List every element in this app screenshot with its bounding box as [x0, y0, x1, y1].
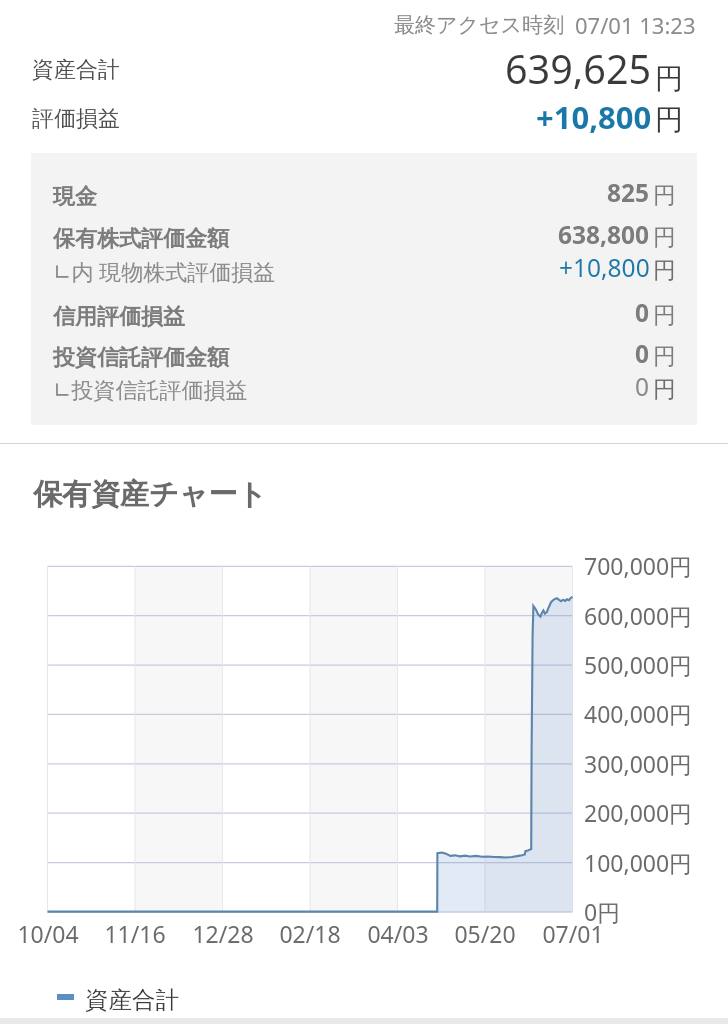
button[interactable]: 投資信託評価金額: [53, 339, 676, 372]
staticText: ∟投資信託評価損益: [53, 377, 248, 405]
staticText: 825: [607, 176, 650, 209]
staticText: 円: [653, 375, 676, 404]
staticText: 円: [655, 61, 683, 96]
button[interactable]: [0, 48, 728, 90]
staticText: 0: [635, 296, 650, 329]
staticText: 円: [655, 102, 683, 137]
staticText: 300,000円: [584, 748, 693, 779]
button[interactable]: 現金: [53, 178, 676, 211]
staticText: +10,800: [536, 96, 652, 138]
staticText: 最終アクセス時刻: [394, 12, 564, 38]
staticText: 円: [653, 223, 676, 252]
staticText: 638,800: [558, 218, 650, 251]
staticText: 円: [653, 256, 676, 285]
staticText: ∟内 現物株式評価損益: [53, 256, 276, 286]
staticText: 400,000円: [584, 698, 693, 729]
staticText: 投資信託評価金額: [53, 344, 229, 372]
staticText: 現金: [53, 183, 97, 211]
staticText: 500,000円: [584, 649, 693, 680]
staticText: 02/18: [265, 918, 355, 949]
staticText: 評価損益: [32, 105, 120, 133]
staticText: 12/28: [178, 918, 268, 949]
button[interactable]: 保有資産チャート: [16, 540, 712, 950]
staticText: 600,000円: [584, 600, 693, 631]
staticText: 07/01 13:23: [575, 10, 696, 40]
staticText: 700,000円: [584, 550, 693, 581]
staticText: 0: [635, 337, 650, 370]
button[interactable]: ∟内 現物株式評価損益: [53, 253, 676, 286]
staticText: 200,000円: [584, 797, 693, 828]
button[interactable]: [0, 100, 728, 140]
button[interactable]: 信用評価損益: [53, 298, 676, 331]
staticText: 0円: [584, 896, 621, 927]
staticText: 07/01: [528, 918, 618, 949]
staticText: 100,000円: [584, 847, 693, 878]
staticText: 円: [653, 181, 676, 210]
button[interactable]: 保有株式評価金額: [53, 220, 676, 253]
staticText: 05/20: [440, 918, 530, 949]
staticText: 639,625: [505, 42, 652, 96]
staticText: +10,800: [559, 251, 650, 284]
staticText: 信用評価損益: [53, 303, 185, 331]
button[interactable]: 資産合計: [57, 985, 179, 1015]
staticText: 資産合計: [85, 985, 179, 1015]
staticText: 円: [653, 301, 676, 330]
staticText: 11/16: [90, 918, 180, 949]
staticText: 0: [635, 370, 650, 403]
staticText: 保有株式評価金額: [53, 225, 229, 253]
staticText: 10/04: [3, 918, 93, 949]
button[interactable]: ∟投資信託評価損益: [53, 372, 676, 405]
staticText: 04/03: [353, 918, 443, 949]
staticText: 保有資産チャート: [33, 476, 268, 513]
staticText: 資産合計: [32, 56, 120, 84]
staticText: 円: [653, 342, 676, 371]
